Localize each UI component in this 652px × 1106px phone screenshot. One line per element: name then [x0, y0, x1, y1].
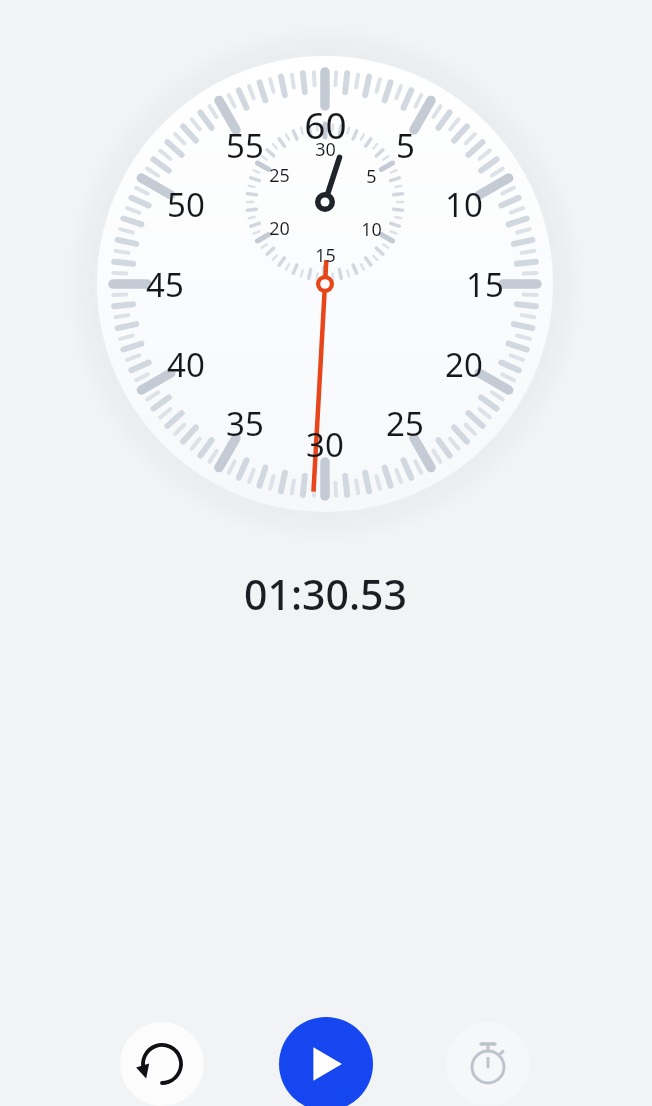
staticText: 5 — [396, 123, 415, 168]
staticText: 25 — [386, 401, 424, 446]
staticText: 15 — [466, 262, 504, 307]
button[interactable]: Lap — [446, 1022, 530, 1106]
staticText: 20 — [269, 216, 290, 241]
staticText: 45 — [146, 262, 184, 307]
staticText: 15 — [315, 243, 336, 268]
staticText: 5 — [366, 164, 377, 189]
staticText: 50 — [167, 182, 205, 227]
staticText: 10 — [445, 182, 483, 227]
staticText: 35 — [226, 401, 264, 446]
staticText: 60 — [304, 99, 347, 149]
staticText: 40 — [167, 342, 205, 387]
staticText: 01:30.53 — [244, 566, 408, 616]
button[interactable]: Start — [279, 1017, 373, 1106]
staticText: 20 — [445, 342, 483, 387]
staticText: 10 — [361, 217, 382, 242]
staticText: 30 — [306, 422, 344, 467]
staticText: 30 — [315, 137, 336, 162]
button[interactable]: Reset — [120, 1022, 204, 1106]
staticText: 25 — [269, 163, 290, 188]
staticText: 55 — [226, 123, 264, 168]
